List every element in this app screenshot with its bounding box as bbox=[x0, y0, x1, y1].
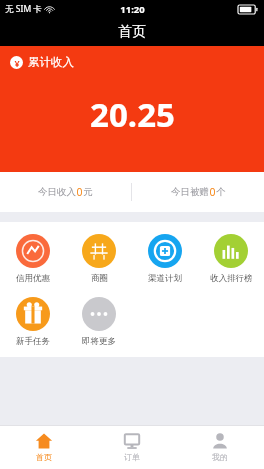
button[interactable]: 商圈 bbox=[66, 232, 132, 286]
staticText: 11:20 bbox=[120, 3, 145, 16]
staticText: 20.25 bbox=[90, 92, 175, 137]
staticText: 商圈 bbox=[91, 273, 108, 284]
staticText: 0 bbox=[76, 185, 83, 199]
staticText: 新手任务 bbox=[16, 336, 50, 347]
button[interactable]: 渠道计划 bbox=[132, 232, 198, 286]
staticText: 首页 bbox=[36, 452, 52, 462]
button[interactable]: 我的 bbox=[176, 425, 264, 469]
staticText: 渠道计划 bbox=[148, 273, 182, 284]
staticText: 我的 bbox=[212, 452, 228, 462]
staticText: 个 bbox=[216, 186, 226, 198]
button[interactable]: 今日被赠 bbox=[132, 175, 264, 209]
button[interactable]: 首页 bbox=[0, 425, 88, 469]
button[interactable]: 信用优惠 bbox=[0, 232, 66, 286]
staticText: 即将更多 bbox=[82, 336, 116, 347]
staticText: 0 bbox=[209, 185, 216, 199]
button[interactable]: 订单 bbox=[88, 425, 176, 469]
staticText: 信用优惠 bbox=[16, 273, 50, 284]
staticText: 首页 bbox=[118, 23, 146, 41]
staticText: 今日收入 bbox=[38, 186, 76, 198]
staticText: 收入排行榜 bbox=[210, 273, 253, 284]
button[interactable]: 新手任务 bbox=[0, 295, 66, 349]
staticText: 累计收入 bbox=[28, 55, 74, 69]
staticText: ¥ bbox=[14, 57, 20, 69]
button[interactable]: 即将更多 bbox=[66, 295, 132, 349]
staticText: 无 SIM 卡 bbox=[5, 3, 42, 15]
button[interactable]: 收入排行榜 bbox=[198, 232, 264, 286]
staticText: 订单 bbox=[124, 452, 140, 462]
button[interactable]: 今日收入 bbox=[0, 175, 131, 209]
staticText: 元 bbox=[83, 186, 93, 198]
staticText: 今日被赠 bbox=[171, 186, 209, 198]
